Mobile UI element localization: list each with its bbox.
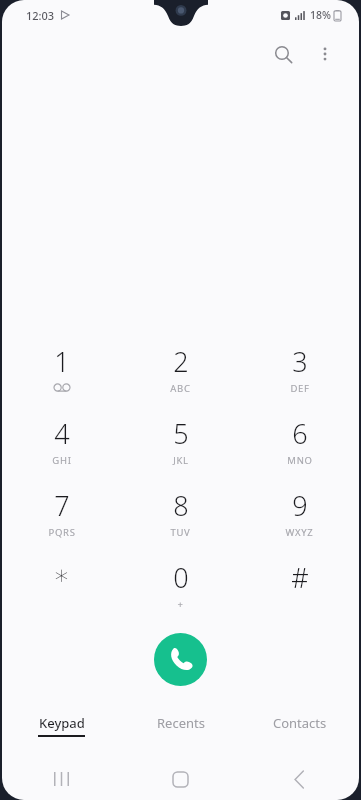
button[interactable]: ∗	[2, 551, 121, 623]
button[interactable]: 8	[121, 479, 240, 551]
staticText: 2	[173, 343, 189, 380]
staticText: 4	[54, 415, 70, 452]
staticText: 3	[292, 343, 308, 380]
staticText: GHI	[52, 454, 72, 467]
button[interactable]: Contacts	[240, 708, 359, 742]
staticText: 7	[54, 487, 70, 524]
staticText: 1	[54, 343, 70, 380]
button[interactable]: 1	[2, 335, 121, 407]
button[interactable]: 2	[121, 335, 240, 407]
staticText: Recents	[157, 714, 205, 732]
button[interactable]: 0	[121, 551, 240, 623]
button[interactable]: 7	[2, 479, 121, 551]
staticText: Contacts	[273, 714, 327, 732]
staticText: 9	[292, 487, 308, 524]
button[interactable]: Keypad	[2, 708, 121, 742]
staticText: 12:03	[26, 8, 55, 23]
staticText: ABC	[170, 382, 191, 395]
button[interactable]: Recents	[121, 708, 240, 742]
button[interactable]: More options	[305, 34, 345, 74]
button[interactable]: Call	[154, 633, 207, 686]
button[interactable]: Home	[121, 758, 240, 800]
button[interactable]: Back	[240, 758, 359, 800]
staticText: 5	[173, 415, 189, 452]
staticText: WXYZ	[285, 526, 314, 539]
staticText: #	[291, 559, 309, 596]
staticText: ∗	[53, 559, 70, 590]
staticText: PQRS	[48, 526, 76, 539]
button[interactable]: 9	[240, 479, 359, 551]
staticText: DEF	[290, 382, 310, 395]
button[interactable]: 5	[121, 407, 240, 479]
button[interactable]: Recents	[2, 758, 121, 800]
staticText: TUV	[170, 526, 191, 539]
staticText: 6	[292, 415, 308, 452]
staticText: JKL	[173, 454, 189, 467]
staticText: 18%	[310, 8, 331, 22]
staticText: MNO	[287, 454, 313, 467]
staticText: Keypad	[39, 714, 85, 732]
button[interactable]: 4	[2, 407, 121, 479]
button[interactable]: 3	[240, 335, 359, 407]
button[interactable]: Search	[261, 32, 305, 76]
staticText: 0	[173, 559, 189, 596]
staticText: 8	[173, 487, 189, 524]
button[interactable]: 6	[240, 407, 359, 479]
staticText: +	[177, 598, 184, 611]
button[interactable]: #	[240, 551, 359, 623]
